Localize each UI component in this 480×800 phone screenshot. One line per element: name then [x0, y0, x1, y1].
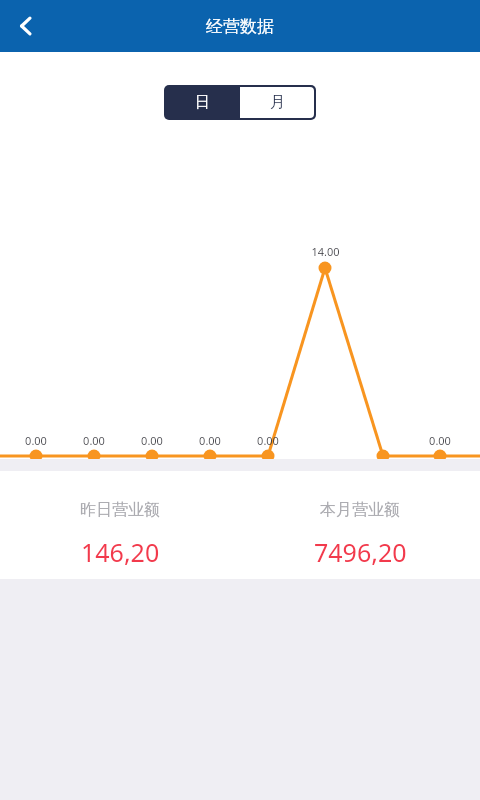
button[interactable]: Back	[0, 0, 52, 52]
staticText: 0.00	[199, 433, 221, 448]
staticText: 昨日营业额	[80, 500, 160, 520]
staticText: 月	[270, 93, 285, 112]
staticText: 0.00	[83, 433, 105, 448]
staticText: 0.00	[429, 433, 451, 448]
staticText: 0.00	[257, 433, 279, 448]
staticText: 本月营业额	[320, 500, 400, 520]
staticText: 经营数据	[206, 16, 274, 37]
button[interactable]: 日	[164, 85, 240, 120]
staticText: 日	[195, 93, 210, 112]
staticText: 0.00	[372, 464, 394, 479]
button[interactable]: 本月营业额	[240, 471, 480, 579]
button[interactable]: 月	[240, 87, 314, 118]
staticText: 14.00	[311, 244, 340, 259]
staticText: 146,20	[81, 535, 160, 569]
button[interactable]: 昨日营业额	[0, 471, 240, 579]
staticText: 0.00	[25, 433, 47, 448]
staticText: 7496,20	[314, 535, 407, 569]
staticText: 0.00	[141, 433, 163, 448]
